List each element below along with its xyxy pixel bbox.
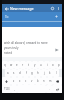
staticText: j xyxy=(44,71,45,75)
button[interactable]: r xyxy=(20,61,26,69)
staticText: ?123 xyxy=(4,87,10,91)
button[interactable]: Backspace xyxy=(53,77,62,85)
staticText: u xyxy=(40,63,42,67)
button[interactable]: k xyxy=(47,69,53,77)
button[interactable]: Enter xyxy=(52,85,62,93)
staticText: k xyxy=(49,71,51,75)
button[interactable]: Send xyxy=(54,47,60,53)
button[interactable]: v xyxy=(29,77,35,85)
button[interactable]: q xyxy=(2,61,8,69)
staticText: New message xyxy=(10,6,34,11)
button[interactable]: Attach xyxy=(49,5,55,11)
staticText: To xyxy=(5,15,9,19)
staticText: v xyxy=(31,79,33,83)
button[interactable]: w xyxy=(8,61,14,69)
staticText: s xyxy=(13,71,15,75)
button[interactable]: Add recipient xyxy=(54,14,59,19)
button[interactable]: n xyxy=(41,77,47,85)
button[interactable]: o xyxy=(50,61,56,69)
staticText: m xyxy=(49,79,52,83)
button[interactable]: c xyxy=(23,77,29,85)
button[interactable]: l xyxy=(53,69,59,77)
staticText: a xyxy=(7,71,9,75)
button[interactable]: t xyxy=(26,61,32,69)
button[interactable]: d xyxy=(17,69,23,77)
button[interactable]: g xyxy=(29,69,35,77)
staticText: d xyxy=(19,71,21,75)
button[interactable]: z xyxy=(11,77,17,85)
staticText: noted xyxy=(4,51,12,55)
button[interactable]: Shift xyxy=(2,77,11,85)
staticText: p xyxy=(58,63,60,67)
button[interactable]: , xyxy=(11,85,17,93)
staticText: wish all aboard, onward to none xyxy=(4,41,48,45)
button[interactable]: e xyxy=(14,61,20,69)
button[interactable]: h xyxy=(35,69,41,77)
staticText: q xyxy=(4,63,6,67)
button[interactable]: b xyxy=(35,77,41,85)
staticText: l xyxy=(56,71,57,75)
button[interactable]: j xyxy=(41,69,47,77)
button[interactable]: s xyxy=(11,69,17,77)
button[interactable]: m xyxy=(47,77,53,85)
button[interactable]: i xyxy=(44,61,50,69)
staticText: yours truly xyxy=(4,46,19,50)
staticText: i xyxy=(47,63,48,67)
staticText: n xyxy=(43,79,45,83)
staticText: o xyxy=(52,63,54,67)
button[interactable]: p xyxy=(56,61,62,69)
button[interactable]: f xyxy=(23,69,29,77)
button[interactable]: x xyxy=(17,77,23,85)
staticText: , xyxy=(14,87,15,91)
staticText: b xyxy=(37,79,39,83)
staticText: c xyxy=(25,79,27,83)
button[interactable]: y xyxy=(32,61,38,69)
staticText: r xyxy=(22,63,24,67)
staticText: z xyxy=(13,79,15,83)
staticText: e xyxy=(16,63,18,67)
button[interactable]: More options xyxy=(55,5,61,11)
button[interactable]: a xyxy=(5,69,11,77)
staticText: h xyxy=(37,71,39,75)
button[interactable]: Back xyxy=(3,5,10,12)
staticText: x xyxy=(19,79,21,83)
staticText: w xyxy=(10,63,13,67)
staticText: y xyxy=(34,63,36,67)
button[interactable]: u xyxy=(38,61,44,69)
staticText: t xyxy=(28,63,30,67)
staticText: f xyxy=(26,71,27,75)
button[interactable]: ?123 xyxy=(2,85,11,93)
staticText: g xyxy=(31,71,33,75)
staticText: . xyxy=(49,87,50,91)
